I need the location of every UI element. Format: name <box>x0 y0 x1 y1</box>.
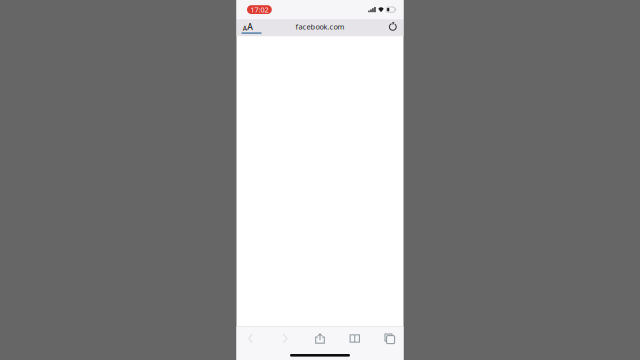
staticText: 17:02 <box>250 5 268 14</box>
button[interactable]: Reload <box>384 18 401 35</box>
button[interactable]: Page settings <box>238 18 257 35</box>
button[interactable]: Back <box>238 329 262 348</box>
staticText: facebook.com <box>295 22 344 32</box>
button[interactable]: Share <box>308 329 332 348</box>
staticText: A <box>247 21 253 32</box>
button[interactable]: Forward <box>273 329 297 348</box>
staticText: A <box>243 24 247 32</box>
button[interactable]: Bookmarks <box>343 329 367 348</box>
button[interactable]: Tabs <box>377 329 401 348</box>
